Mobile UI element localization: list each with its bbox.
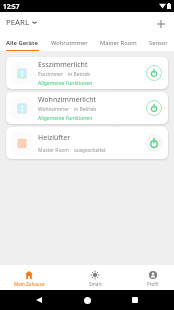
staticText: Esszimmer: [38, 71, 63, 78]
button[interactable]: Wohnzimmerlicht: [6, 92, 168, 124]
button[interactable]: Home: [76, 290, 98, 310]
staticText: Wohnzimmer: [51, 39, 88, 47]
button[interactable]: Recent apps: [124, 290, 146, 310]
staticText: Mein Zuhause: [14, 281, 45, 287]
button[interactable]: Mein Zuhause: [5, 265, 53, 290]
staticText: Master Room: [100, 39, 137, 47]
button[interactable]: Esszimmerlicht: [6, 57, 168, 89]
button[interactable]: Smart: [71, 265, 119, 290]
staticText: in Betrieb: [68, 71, 91, 78]
button[interactable]: Alle Geräte: [0, 34, 45, 51]
staticText: Heizlüfter: [38, 133, 71, 143]
staticText: Smart: [89, 281, 102, 287]
staticText: Wohnzimmer: [38, 106, 69, 113]
staticText: in Betrieb: [74, 106, 97, 113]
staticText: ausgeschaltet: [74, 147, 106, 154]
button[interactable]: Add device: [152, 15, 170, 33]
staticText: PEARL: [6, 17, 29, 28]
button[interactable]: Profil: [129, 265, 174, 290]
staticText: Master Room: [38, 147, 69, 154]
button[interactable]: PEARL: [6, 17, 37, 28]
staticText: Wohnzimmerlicht: [38, 95, 97, 105]
button[interactable]: Wohnzimmer: [45, 34, 94, 51]
button[interactable]: Sensor: [143, 34, 174, 51]
button[interactable]: Power toggle: [144, 133, 164, 153]
button[interactable]: Master Room: [94, 34, 143, 51]
button[interactable]: Heizlüfter: [6, 127, 168, 159]
staticText: Sensor: [149, 39, 168, 47]
button[interactable]: Power toggle: [144, 63, 164, 83]
button[interactable]: Power toggle: [144, 98, 164, 118]
staticText: Esszimmerlicht: [38, 60, 88, 70]
button[interactable]: Back: [28, 290, 50, 310]
staticText: Allgemeine Funktionen: [38, 115, 93, 122]
staticText: Alle Geräte: [6, 39, 39, 47]
staticText: Profil: [147, 281, 159, 287]
staticText: 12:57: [3, 2, 20, 11]
staticText: Allgemeine Funktionen: [38, 80, 93, 87]
